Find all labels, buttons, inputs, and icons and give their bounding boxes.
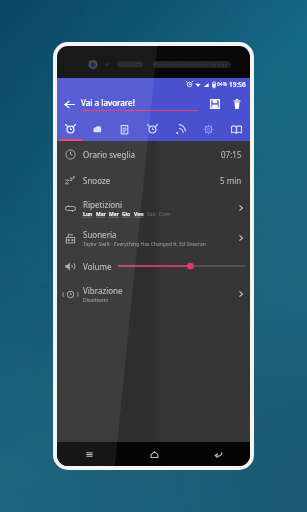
button[interactable]: News (166, 117, 194, 141)
button[interactable]: Save (204, 93, 226, 115)
staticText: Ripetizioni (83, 199, 123, 210)
staticText: 5 min (220, 175, 242, 186)
button[interactable]: Orario sveglia (57, 141, 250, 167)
button[interactable]: Menu (57, 442, 122, 466)
button[interactable]: Guide (222, 117, 250, 141)
button[interactable]: Delete (226, 93, 248, 115)
button[interactable]: Snooze (57, 167, 250, 193)
button[interactable]: Weather (84, 117, 111, 141)
staticText: Disattivato (83, 297, 109, 304)
staticText: Suoneria (83, 229, 117, 240)
button[interactable]: Settings (194, 117, 222, 141)
staticText: Ven (134, 211, 144, 218)
button[interactable]: Alarms (57, 117, 84, 141)
button[interactable]: Ripetizioni (57, 193, 250, 223)
button[interactable]: Suoneria (57, 223, 250, 253)
staticText: Taylor Swift - Everything Has Changed ft… (83, 241, 206, 248)
staticText: Snooze (83, 175, 111, 186)
staticText: Orario sveglia (83, 149, 136, 160)
staticText: Gio (122, 211, 131, 218)
staticText: 19:56 (229, 80, 246, 89)
button[interactable]: Timer (138, 117, 166, 141)
button[interactable]: Home (122, 442, 186, 466)
button[interactable]: Vibrazione (57, 279, 250, 309)
button[interactable]: Notes (111, 117, 138, 141)
staticText: Mar (96, 211, 106, 218)
button[interactable]: Back (57, 92, 81, 116)
button[interactable]: Volume (57, 253, 250, 279)
staticText: 07:15 (221, 149, 242, 160)
staticText: Vibrazione (83, 285, 123, 296)
staticText: Vai a lavorare! (81, 97, 135, 108)
button[interactable]: Vai a lavorare! (81, 97, 198, 111)
staticText: 64% (217, 81, 227, 88)
staticText: Dom (159, 211, 171, 218)
staticText: Volume (83, 261, 112, 272)
staticText: Lun (83, 211, 93, 218)
button[interactable]: Back (186, 442, 250, 466)
staticText: Mer (109, 211, 119, 218)
staticText: Sab (147, 211, 156, 218)
